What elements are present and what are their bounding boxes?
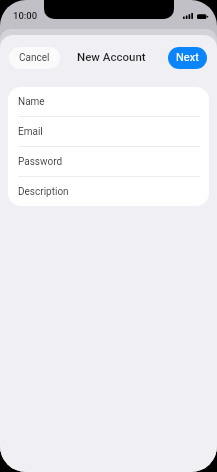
staticText: Next	[176, 51, 199, 63]
staticText: Description	[18, 186, 69, 198]
staticText: Cancel	[19, 52, 50, 64]
button[interactable]: Password	[8, 147, 209, 177]
button[interactable]: Next	[168, 47, 207, 69]
staticText: New Account	[77, 50, 146, 63]
button[interactable]: Name	[8, 87, 209, 117]
staticText: Name	[18, 96, 45, 108]
staticText: Password	[18, 156, 63, 168]
button[interactable]: Email	[8, 117, 209, 147]
button[interactable]: Description	[8, 177, 209, 206]
staticText: 10:00	[13, 10, 38, 21]
other: Signal and battery status	[183, 13, 208, 19]
staticText: Email	[18, 126, 43, 138]
button[interactable]: Cancel	[9, 47, 60, 69]
